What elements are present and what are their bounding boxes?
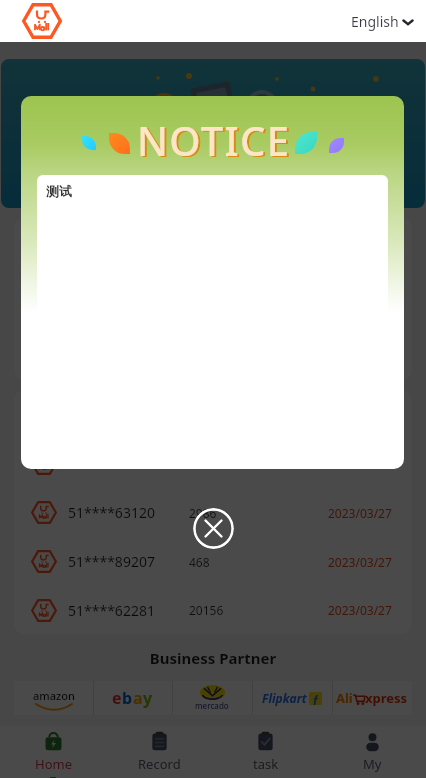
staticText: 测试 (46, 183, 72, 199)
staticText: f (313, 692, 318, 705)
staticText: 468 (189, 554, 210, 570)
staticText: NOTICE (139, 114, 293, 168)
staticText: xpress (365, 689, 408, 707)
staticText: 2986 (189, 456, 217, 472)
button[interactable]: 51****63120 (14, 488, 412, 537)
staticText: Home (35, 755, 72, 773)
button[interactable]: Flipkart (252, 681, 332, 715)
staticText: 2023/03/27 (328, 602, 392, 618)
staticText: b (122, 687, 133, 709)
staticText: 51****89207 (68, 552, 155, 571)
staticText: amazon (33, 688, 75, 703)
button[interactable]: Home (0, 726, 106, 778)
staticText: 2023/03/27 (328, 554, 392, 570)
staticText: 51****63120 (68, 454, 155, 473)
staticText: y (143, 687, 153, 709)
staticText: 2023/03/27 (328, 456, 392, 472)
button[interactable]: task (212, 726, 319, 778)
button[interactable]: amazon (14, 681, 93, 715)
staticText: Ali (336, 689, 353, 707)
staticText: a (133, 687, 143, 709)
staticText: 51****62281 (68, 601, 155, 620)
staticText: NOTICE (137, 113, 291, 167)
button[interactable]: mercado (172, 681, 252, 715)
staticText: e (112, 687, 122, 709)
staticText: 51****63120 (68, 503, 155, 522)
staticText: Business Partner (0, 648, 426, 668)
button[interactable]: 51****89207 (14, 537, 412, 586)
staticText: 2023/03/27 (328, 505, 392, 521)
button[interactable]: Mall home (22, 3, 62, 39)
staticText: 20156 (189, 602, 224, 618)
staticText: task (253, 755, 279, 773)
staticText: My (363, 755, 382, 773)
staticText: Flipkart (262, 690, 307, 706)
button[interactable]: Ali (332, 681, 412, 715)
staticText: mercado (195, 700, 229, 711)
staticText: 2986 (189, 505, 217, 521)
button[interactable]: e (93, 681, 172, 715)
button[interactable]: 51****62281 (14, 586, 412, 634)
button[interactable]: My (319, 726, 426, 778)
button[interactable]: Record (106, 726, 212, 778)
button[interactable]: 51****63120 (14, 439, 412, 488)
staticText: English (351, 12, 399, 31)
button[interactable]: English (351, 12, 414, 31)
staticText: Record (138, 755, 181, 773)
button[interactable]: Close (193, 508, 234, 549)
